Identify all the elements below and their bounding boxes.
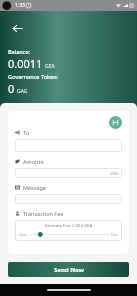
staticText: Estimate Fee: 0.004 GEA bbox=[19, 223, 118, 229]
button[interactable]: MAX bbox=[15, 168, 122, 178]
staticText: fast bbox=[111, 232, 118, 237]
button[interactable] bbox=[15, 194, 122, 204]
staticText: Governance Token: bbox=[8, 73, 59, 80]
staticText: 1:33 bbox=[15, 2, 25, 9]
button[interactable] bbox=[28, 231, 111, 238]
staticText: GEA bbox=[45, 63, 55, 70]
staticText: MAX bbox=[110, 171, 119, 176]
staticText: 0 bbox=[8, 81, 15, 96]
staticText: GAG bbox=[17, 88, 28, 95]
staticText: Send Now bbox=[54, 266, 84, 274]
button[interactable]: Send Now bbox=[8, 262, 129, 277]
button[interactable] bbox=[15, 139, 122, 152]
button[interactable]: Back bbox=[8, 19, 26, 37]
staticText: Transaction Fee bbox=[23, 210, 64, 217]
staticText: 0.0011 bbox=[8, 56, 43, 71]
button[interactable]: Scan QR code bbox=[109, 116, 122, 129]
staticText: Amount bbox=[23, 158, 44, 165]
staticText: slow bbox=[19, 232, 28, 237]
staticText: Balance: bbox=[8, 48, 31, 55]
staticText: Message bbox=[23, 184, 46, 191]
staticText: To bbox=[23, 129, 30, 136]
